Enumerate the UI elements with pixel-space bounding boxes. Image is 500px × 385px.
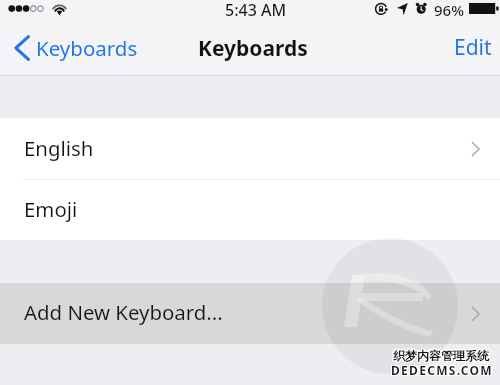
button[interactable]: English [0,118,500,179]
staticText: 织梦内容管理系统 [392,348,488,363]
staticText: 织梦内容管理系统 [392,349,488,364]
staticText: Keyboards [36,34,138,62]
button[interactable]: Emoji [0,180,500,240]
staticText: 织梦内容管理系统 [392,347,488,362]
staticText: DEDECMS.COM [391,363,493,379]
staticText: 5:43 AM [225,0,287,21]
button[interactable]: Edit [438,29,500,68]
staticText: DEDECMS.COM [392,363,494,379]
staticText: Edit [454,33,492,62]
button[interactable]: Add New Keyboard... [0,283,500,344]
staticText: 织梦内容管理系统 [394,348,490,363]
staticText: 织梦内容管理系统 [393,349,489,364]
staticText: DEDECMS.COM [391,361,493,377]
staticText: Add New Keyboard... [24,298,223,326]
staticText: DEDECMS.COM [392,362,494,378]
staticText: 织梦内容管理系统 [394,347,490,362]
staticText: Emoji [24,195,78,223]
staticText: DEDECMS.COM [390,361,492,377]
staticText: DEDECMS.COM [390,363,492,379]
staticText: 织梦内容管理系统 [394,349,490,364]
staticText: DEDECMS.COM [392,361,494,377]
staticText: Keyboards [198,34,308,63]
staticText: 96% [434,0,464,20]
staticText: 织梦内容管理系统 [393,347,489,362]
staticText: DEDECMS.COM [391,362,493,378]
staticText: 织梦内容管理系统 [393,348,489,363]
staticText: DEDECMS.COM [390,362,492,378]
staticText: English [24,134,94,162]
button[interactable]: Back to Keyboards [0,32,148,64]
